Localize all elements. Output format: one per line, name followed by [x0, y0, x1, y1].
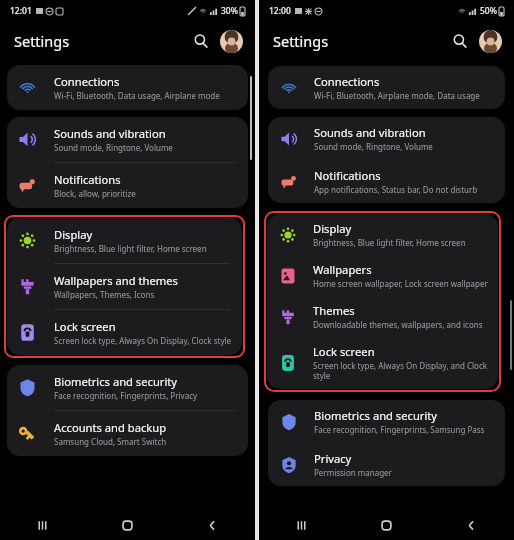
staticText: Permission manager: [314, 467, 392, 478]
staticText: Themes: [313, 303, 355, 318]
button[interactable]: Themes: [267, 296, 498, 337]
staticText: Sounds and vibration: [314, 125, 426, 140]
staticText: Brightness, Blue light filter, Home scre…: [54, 243, 207, 254]
staticText: Lock screen: [313, 344, 375, 359]
staticText: Wallpapers and themes: [54, 273, 178, 288]
button[interactable]: Connections: [7, 65, 248, 110]
button[interactable]: Profile: [219, 29, 244, 54]
button[interactable]: Profile: [478, 29, 503, 54]
button[interactable]: Sounds and vibration: [268, 117, 505, 160]
button[interactable]: Home: [85, 510, 170, 540]
staticText: Lock screen: [54, 319, 116, 334]
staticText: Face recognition, Fingerprints, Privacy: [54, 390, 198, 401]
staticText: Sounds and vibration: [54, 126, 166, 141]
button[interactable]: Display: [7, 218, 242, 263]
staticText: Settings: [14, 31, 70, 51]
button[interactable]: Lock screen: [267, 337, 498, 389]
staticText: Wi-Fi, Bluetooth, Data usage, Airplane m…: [54, 90, 220, 101]
staticText: Privacy: [314, 451, 352, 466]
staticText: 12:01: [10, 5, 32, 17]
staticText: Downloadable themes, wallpapers, and ico…: [313, 319, 483, 330]
staticText: Biometrics and security: [54, 374, 178, 389]
staticText: Notifications: [54, 172, 121, 187]
staticText: Sound mode, Ringtone, Volume: [54, 142, 173, 153]
button[interactable]: Back: [170, 510, 255, 540]
button[interactable]: Connections: [268, 66, 505, 109]
staticText: Brightness, Blue light filter, Home scre…: [313, 237, 466, 248]
staticText: Block, allow, prioritize: [54, 188, 136, 199]
button[interactable]: Notifications: [268, 160, 505, 203]
staticText: App notifications, Status bar, Do not di…: [314, 184, 478, 195]
staticText: Biometrics and security: [314, 408, 438, 423]
button[interactable]: Recents: [0, 510, 85, 540]
staticText: Face recognition, Fingerprints, Samsung …: [314, 424, 485, 435]
button[interactable]: Accounts and backup: [7, 411, 248, 456]
button[interactable]: Privacy: [268, 443, 505, 486]
button[interactable]: Biometrics and security: [7, 365, 248, 410]
staticText: Wallpapers: [313, 262, 372, 277]
staticText: 50%: [480, 5, 497, 17]
button[interactable]: Lock screen: [7, 310, 242, 355]
staticText: 12:00: [269, 5, 291, 17]
staticText: Wi-Fi, Bluetooth, Airplane mode, Data us…: [314, 90, 480, 101]
button[interactable]: Notifications: [7, 163, 248, 208]
staticText: Notifications: [314, 168, 381, 183]
staticText: Connections: [54, 74, 120, 89]
staticText: Sound mode, Ringtone, Volume: [314, 141, 433, 152]
staticText: Display: [54, 227, 93, 242]
button[interactable]: Wallpapers: [267, 255, 498, 296]
button[interactable]: Recents: [259, 510, 344, 540]
staticText: Connections: [314, 74, 380, 89]
staticText: Samsung Cloud, Smart Switch: [54, 436, 167, 447]
button[interactable]: Search: [188, 28, 214, 54]
staticText: Screen lock type, Always On Display, Clo…: [54, 335, 232, 346]
button[interactable]: Wallpapers and themes: [7, 264, 242, 309]
button[interactable]: Search: [447, 28, 473, 54]
staticText: Accounts and backup: [54, 420, 167, 435]
button[interactable]: Back: [429, 510, 514, 540]
staticText: 30%: [221, 5, 238, 17]
staticText: Wallpapers, Themes, Icons: [54, 289, 155, 300]
button[interactable]: Biometrics and security: [268, 400, 505, 443]
button[interactable]: Home: [344, 510, 429, 540]
staticText: Screen lock type, Always On Display, and…: [313, 360, 488, 382]
staticText: Display: [313, 221, 352, 236]
button[interactable]: Sounds and vibration: [7, 117, 248, 162]
staticText: Settings: [273, 31, 329, 51]
staticText: Home screen wallpaper, Lock screen wallp…: [313, 278, 488, 289]
button[interactable]: Display: [267, 214, 498, 255]
